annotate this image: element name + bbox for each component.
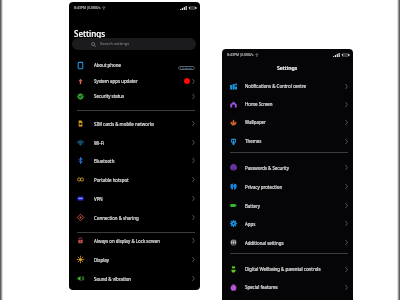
staticText: Connection & sharing (94, 215, 139, 221)
staticText: Home Screen (245, 101, 273, 107)
button[interactable]: Additional settings (222, 233, 353, 252)
staticText: 8:43PM|0.0KB/s (74, 5, 101, 10)
staticText: Privacy protection (245, 184, 283, 190)
staticText: Settings (277, 64, 298, 71)
staticText: System apps updater (94, 78, 138, 84)
button[interactable]: SIM cards & mobile networks (69, 114, 200, 133)
button[interactable]: Wi-Fi (69, 133, 200, 152)
staticText: Digital Wellbeing & parental controls (245, 266, 321, 272)
staticText: Portable hotspot (94, 177, 129, 183)
button[interactable]: VPN (69, 189, 200, 208)
staticText: Display (94, 257, 109, 263)
button[interactable]: Search settings (72, 38, 196, 50)
button[interactable]: Connection & sharing (69, 208, 200, 227)
staticText: Themes (245, 138, 262, 144)
staticText: SIM cards & mobile networks (94, 121, 155, 127)
button[interactable]: About phone (69, 57, 200, 73)
button[interactable]: Sound & vibration (69, 269, 200, 288)
button[interactable]: Privacy protection (222, 177, 353, 196)
button[interactable]: Apps (222, 214, 353, 233)
staticText: Settings (74, 28, 106, 39)
staticText: Bluetooth (94, 158, 115, 164)
button[interactable]: Passwords & Security (222, 158, 353, 177)
button[interactable]: Display (69, 250, 200, 269)
button[interactable]: Wallpaper (222, 113, 353, 131)
staticText: Special features (245, 284, 278, 290)
staticText: Notifications & Control centre (245, 83, 307, 89)
button[interactable]: System apps updater (69, 73, 200, 89)
staticText: Search settings (100, 41, 130, 47)
staticText: Passwords & Security (245, 165, 289, 171)
button[interactable]: Portable hotspot (69, 170, 200, 189)
staticText: Apps (245, 221, 256, 227)
staticText: About phone (94, 62, 121, 68)
button[interactable]: Battery (222, 196, 353, 215)
staticText: Wi-Fi (94, 140, 105, 146)
staticText: 8:43PM|0.0KB/s (227, 52, 254, 57)
staticText: Sound & vibration (94, 276, 132, 282)
staticText: VPN (94, 196, 103, 202)
button[interactable]: Special features (222, 278, 353, 296)
button[interactable]: Digital Wellbeing & parental controls (222, 260, 353, 278)
button[interactable]: Always on display & Lock screen (69, 231, 200, 250)
staticText: Always on display & Lock screen (94, 238, 160, 244)
button[interactable]: Bluetooth (69, 151, 200, 170)
button[interactable]: Notifications & Control centre (222, 77, 353, 95)
button[interactable]: Home Screen (222, 95, 353, 113)
staticText: Battery (245, 203, 261, 209)
button[interactable]: Themes (222, 132, 353, 150)
staticText: Additional settings (245, 240, 284, 246)
staticText: Security status (94, 93, 125, 99)
staticText: Update (180, 66, 193, 70)
staticText: Wallpaper (245, 119, 266, 125)
button[interactable]: Security status (69, 88, 200, 104)
